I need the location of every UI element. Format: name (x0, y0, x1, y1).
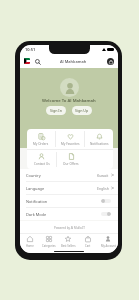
button[interactable]: Dark Mode (20, 208, 118, 220)
staticText: Cart (85, 244, 91, 248)
staticText: Language (26, 186, 45, 191)
button[interactable]: Contact Us (27, 150, 56, 169)
button[interactable]: Best Sellers (58, 234, 78, 249)
staticText: Categories (42, 244, 56, 248)
button[interactable]: Notification (101, 199, 111, 203)
button[interactable]: My Orders (27, 129, 55, 149)
staticText: Sign Up (75, 108, 89, 113)
button[interactable]: Language (20, 182, 118, 194)
button[interactable]: Categories (39, 234, 58, 249)
button[interactable]: Sign Up (72, 106, 92, 115)
staticText: Our Offers (63, 162, 79, 166)
staticText: Country (26, 173, 41, 178)
button[interactable]: Sign In (46, 106, 66, 115)
button[interactable]: My Favorites (56, 129, 84, 149)
button[interactable]: My Account (98, 234, 118, 249)
button[interactable]: Home (20, 234, 39, 249)
staticText: Best Sellers (61, 244, 76, 248)
button[interactable]: Country (20, 169, 118, 181)
staticText: My Orders (33, 142, 49, 146)
button[interactable]: Our Offers (57, 150, 85, 169)
button[interactable]: Notification (20, 195, 118, 207)
staticText: Dark Mode (26, 212, 47, 217)
staticText: English (97, 186, 109, 191)
button[interactable]: Search (34, 58, 41, 65)
staticText: Contact Us (34, 162, 50, 166)
button[interactable]: Dark Mode (101, 212, 111, 216)
staticText: Kuwait (97, 173, 109, 178)
staticText: My Account (101, 244, 116, 248)
staticText: 10:51 (25, 47, 36, 52)
button[interactable]: Select country (24, 58, 30, 64)
staticText: My Favorites (61, 142, 80, 146)
staticText: Notification (26, 199, 48, 204)
staticText: Powered by Al Mulla IT (54, 226, 85, 230)
button[interactable]: Notifications (85, 129, 113, 149)
staticText: Welcome To Al Mahkamah (42, 98, 96, 104)
staticText: Al Mahkamah (60, 59, 87, 64)
button[interactable]: Cart (107, 58, 114, 65)
staticText: Notifications (90, 142, 109, 146)
staticText: Home (26, 244, 34, 248)
staticText: Sign In (50, 108, 62, 113)
button[interactable]: Cart (78, 234, 98, 249)
